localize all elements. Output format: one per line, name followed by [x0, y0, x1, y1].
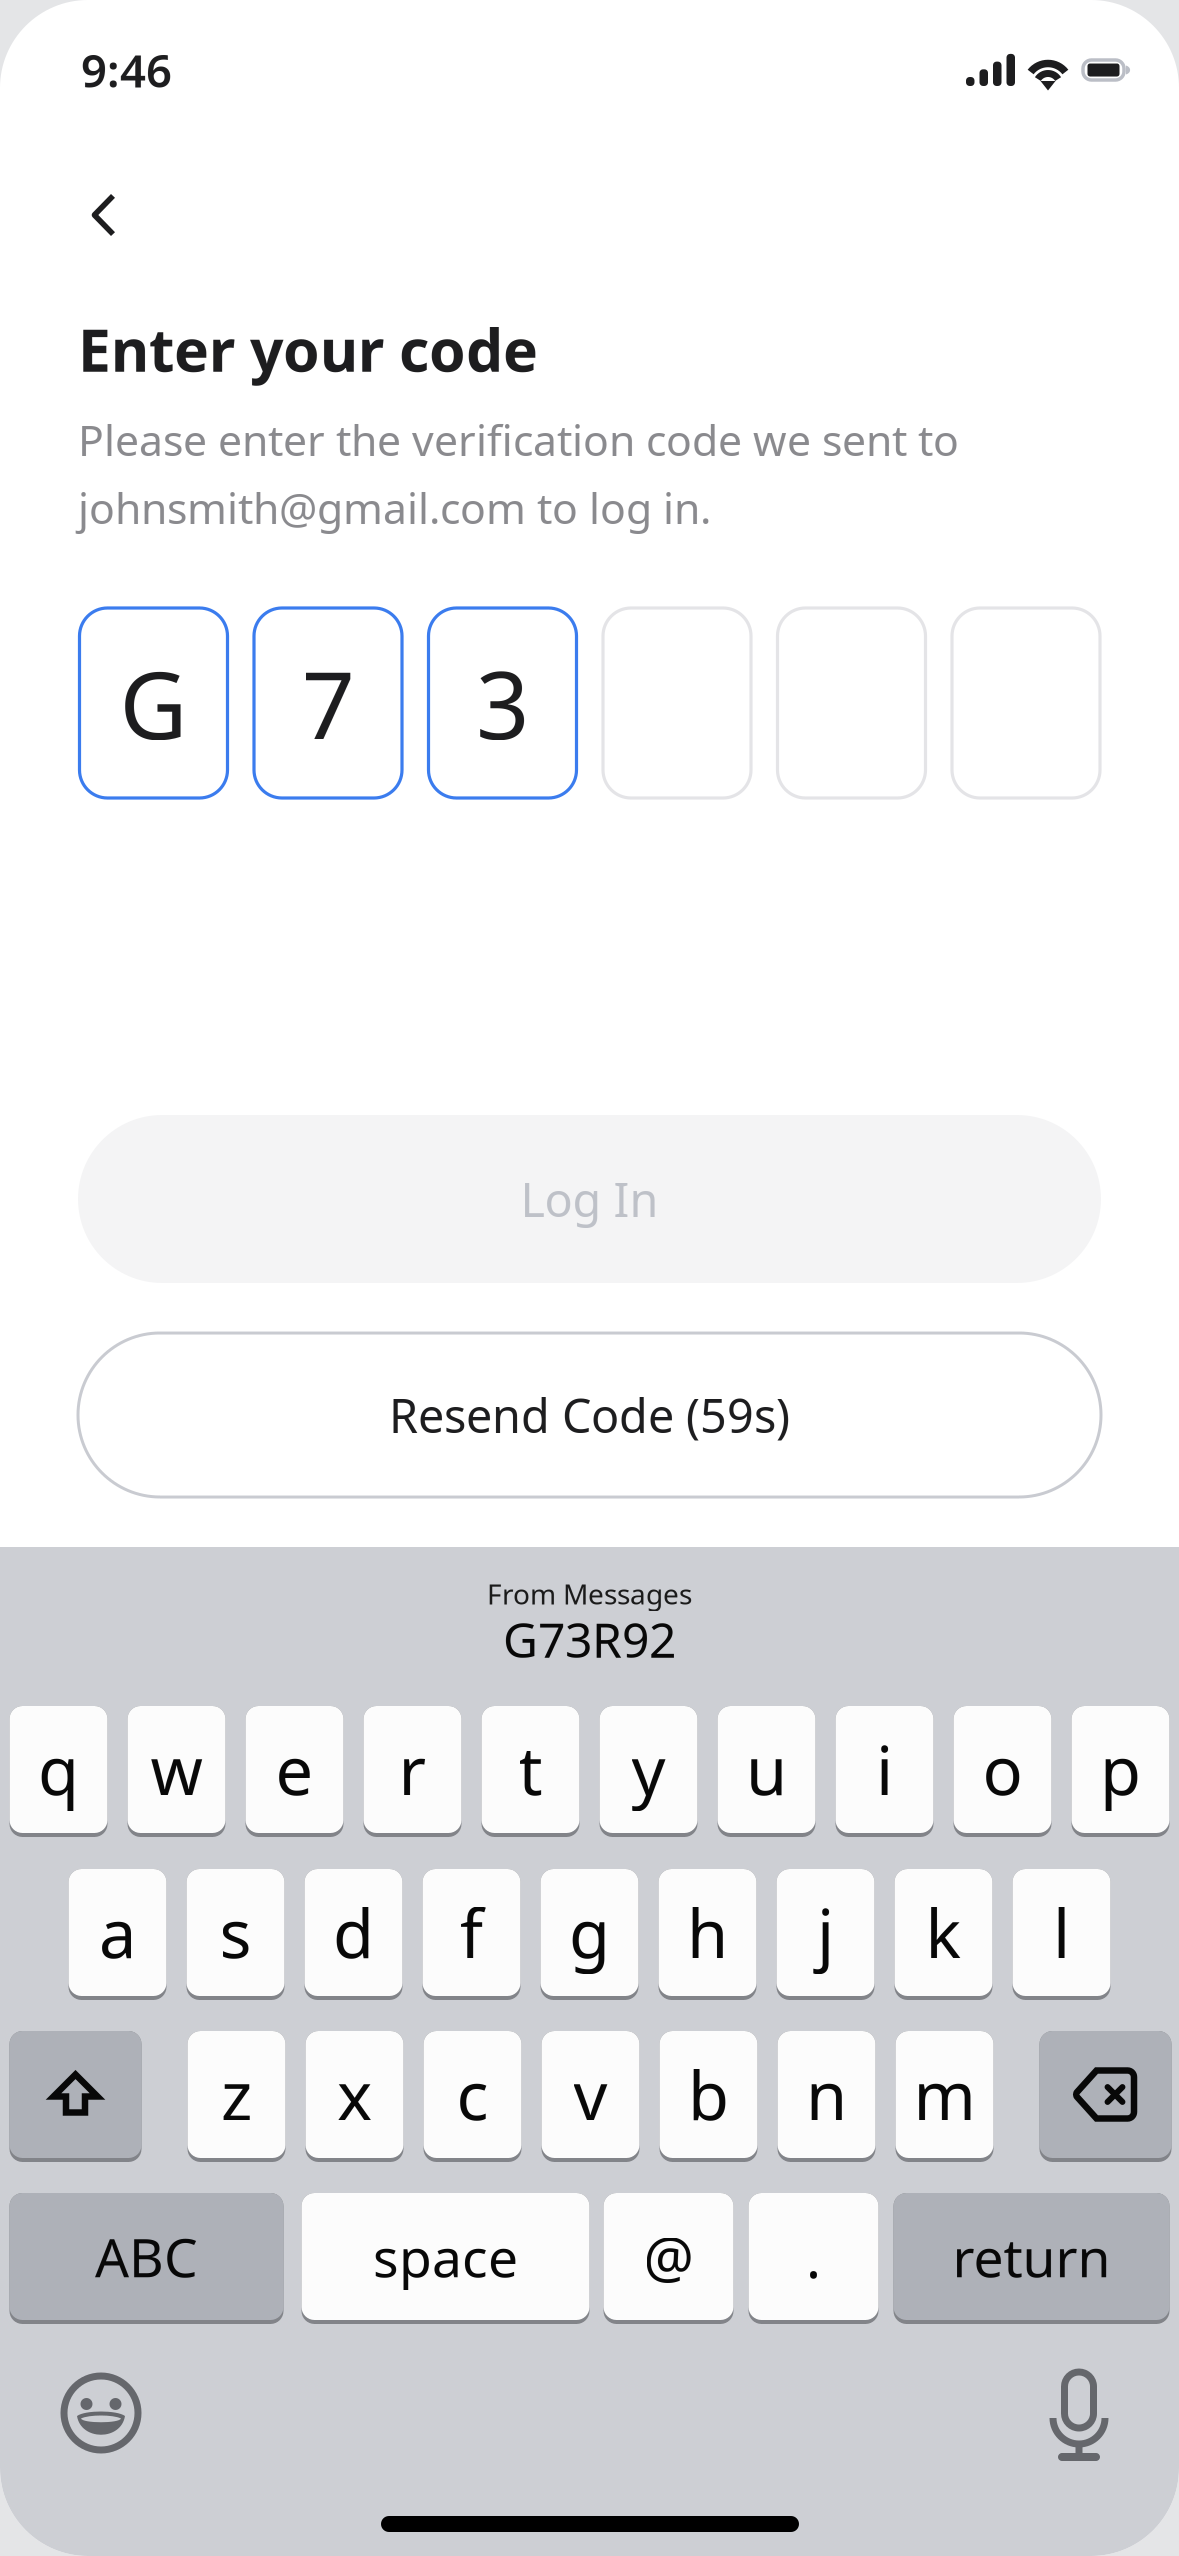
- button[interactable]: b: [659, 2031, 757, 2162]
- button[interactable]: Digit 3: [428, 608, 576, 798]
- button[interactable]: .: [748, 2193, 878, 2324]
- button[interactable]: Shift: [9, 2031, 141, 2162]
- staticText: t: [518, 1725, 542, 1814]
- staticText: 7: [301, 641, 354, 765]
- button[interactable]: Empty digit: [777, 608, 925, 798]
- staticText: q: [38, 1725, 79, 1814]
- staticText: o: [982, 1725, 1022, 1814]
- button[interactable]: Digit 7: [254, 608, 402, 798]
- staticText: g: [569, 1888, 610, 1977]
- staticText: s: [219, 1888, 251, 1977]
- button[interactable]: return: [893, 2193, 1169, 2324]
- button[interactable]: k: [894, 1869, 992, 2000]
- staticText: k: [925, 1888, 961, 1977]
- button[interactable]: l: [1012, 1869, 1110, 2000]
- button[interactable]: Delete: [1039, 2031, 1171, 2162]
- button[interactable]: Dictation: [1049, 2368, 1109, 2458]
- staticText: Enter your code: [78, 310, 538, 388]
- button[interactable]: y: [599, 1706, 697, 1837]
- staticText: Please enter the verification code we se…: [78, 411, 959, 468]
- button[interactable]: Empty digit: [952, 608, 1100, 798]
- button[interactable]: x: [305, 2031, 403, 2162]
- staticText: From Messages: [487, 1575, 692, 1612]
- staticText: f: [460, 1888, 483, 1977]
- button[interactable]: z: [187, 2031, 285, 2162]
- button[interactable]: space: [301, 2193, 589, 2324]
- staticText: a: [99, 1888, 136, 1977]
- staticText: d: [333, 1888, 374, 1977]
- button[interactable]: p: [1071, 1706, 1169, 1837]
- staticText: v: [573, 2050, 607, 2139]
- staticText: ABC: [95, 2221, 198, 2292]
- staticText: return: [952, 2221, 1110, 2292]
- staticText: 9:46: [81, 40, 172, 100]
- staticText: e: [275, 1725, 313, 1814]
- staticText: space: [373, 2221, 518, 2292]
- button[interactable]: Digit G: [79, 608, 227, 798]
- button[interactable]: Log In: [78, 1115, 1101, 1283]
- staticText: Log In: [520, 1168, 658, 1230]
- button[interactable]: f: [422, 1869, 520, 2000]
- button[interactable]: Resend Code (59s): [78, 1333, 1101, 1497]
- button[interactable]: v: [541, 2031, 639, 2162]
- staticText: n: [806, 2050, 847, 2139]
- staticText: u: [746, 1725, 787, 1814]
- button[interactable]: e: [245, 1706, 343, 1837]
- staticText: h: [687, 1888, 728, 1977]
- button[interactable]: g: [540, 1869, 638, 2000]
- staticText: j: [817, 1888, 834, 1977]
- staticText: @: [643, 2219, 693, 2294]
- button[interactable]: Emoji keyboard: [60, 2372, 142, 2454]
- button[interactable]: u: [717, 1706, 815, 1837]
- button[interactable]: t: [481, 1706, 579, 1837]
- button[interactable]: i: [835, 1706, 933, 1837]
- staticText: c: [456, 2050, 488, 2139]
- staticText: johnsmith@gmail.com to log in.: [78, 479, 711, 536]
- button[interactable]: j: [776, 1869, 874, 2000]
- staticText: m: [913, 2050, 975, 2139]
- staticText: y: [631, 1725, 665, 1814]
- staticText: G73R92: [503, 1607, 676, 1671]
- button[interactable]: w: [127, 1706, 225, 1837]
- button[interactable]: Back: [0, 168, 160, 262]
- staticText: r: [398, 1725, 426, 1814]
- staticText: Resend Code (59s): [389, 1384, 790, 1446]
- button[interactable]: c: [423, 2031, 521, 2162]
- staticText: l: [1053, 1888, 1070, 1977]
- staticText: w: [150, 1725, 202, 1814]
- button[interactable]: o: [953, 1706, 1051, 1837]
- staticText: .: [806, 2219, 821, 2294]
- button[interactable]: q: [9, 1706, 107, 1837]
- button[interactable]: r: [363, 1706, 461, 1837]
- button[interactable]: s: [186, 1869, 284, 2000]
- staticText: z: [221, 2050, 252, 2139]
- staticText: p: [1100, 1725, 1141, 1814]
- staticText: x: [337, 2050, 372, 2139]
- button[interactable]: h: [658, 1869, 756, 2000]
- button[interactable]: d: [304, 1869, 402, 2000]
- button[interactable]: a: [68, 1869, 166, 2000]
- button[interactable]: n: [777, 2031, 875, 2162]
- button[interactable]: Empty digit: [603, 608, 751, 798]
- staticText: b: [688, 2050, 729, 2139]
- button[interactable]: @: [603, 2193, 733, 2324]
- button[interactable]: ABC: [9, 2193, 283, 2324]
- button[interactable]: m: [895, 2031, 993, 2162]
- staticText: G: [119, 641, 187, 765]
- staticText: i: [876, 1725, 893, 1814]
- staticText: 3: [476, 641, 529, 765]
